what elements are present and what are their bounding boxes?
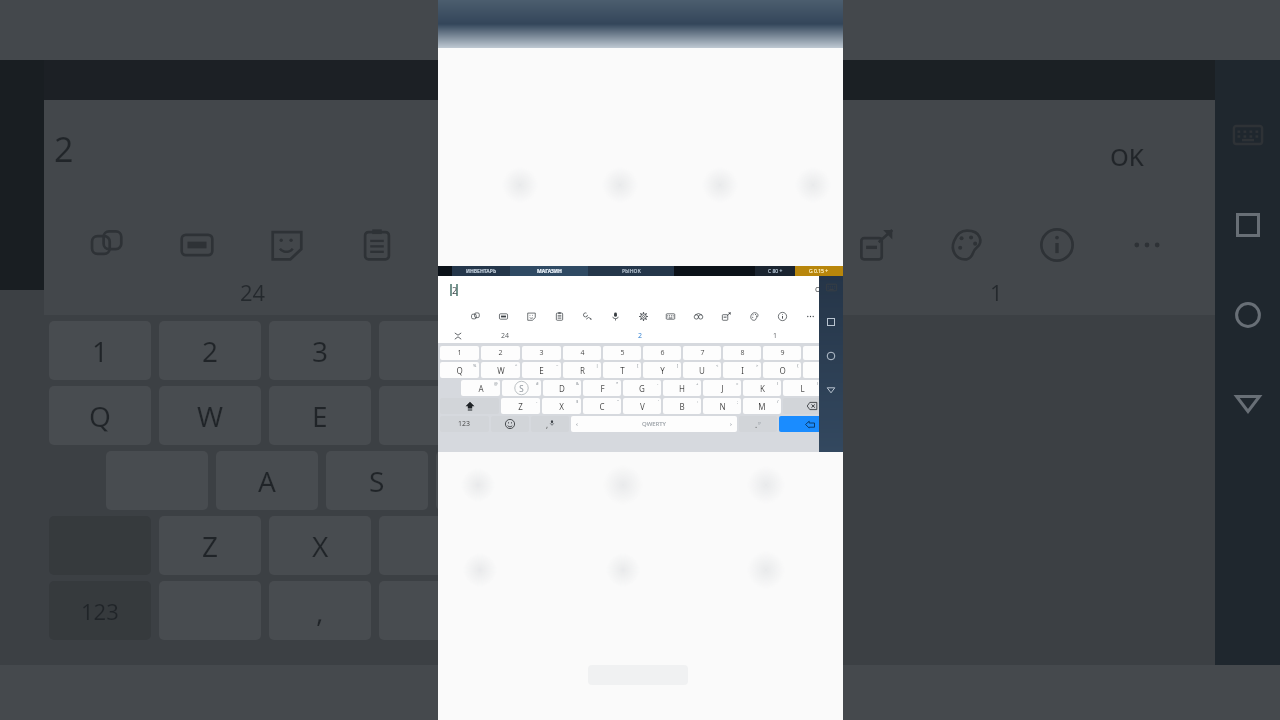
button[interactable]: W [481,362,520,378]
staticText: ; [737,399,739,404]
button[interactable]: Backspace [783,398,841,414]
staticText: { [797,363,799,368]
staticText: 24 [501,331,510,341]
staticText: * [616,381,619,386]
button[interactable]: U [683,362,721,378]
button[interactable]: Translate [468,309,482,323]
button[interactable]: 6 [643,346,681,360]
staticText: S [369,462,385,500]
button[interactable]: N [703,398,741,414]
button[interactable]: Shift [440,398,499,414]
button[interactable]: 8 [723,346,761,360]
button[interactable]: Resize [719,309,733,323]
button[interactable]: I [723,362,761,378]
button[interactable]: Emoji [491,416,529,432]
button[interactable]: Enter [779,416,841,432]
button[interactable]: ‹ [571,416,737,432]
button[interactable]: Home [826,351,836,361]
staticText: M [758,401,766,412]
button[interactable]: Info [775,309,789,323]
button[interactable]: Clipboard [552,309,566,323]
staticText: Z [202,527,219,565]
button[interactable]: OK [809,282,831,298]
button[interactable]: B [663,398,701,414]
button[interactable]: 1 [708,328,843,343]
button[interactable]: J [703,380,741,396]
button[interactable]: Q [440,362,479,378]
button[interactable]: A [461,380,500,396]
staticText: R [580,365,585,376]
button[interactable]: More [803,309,817,323]
staticText: V [640,401,645,412]
button[interactable]: X [542,398,581,414]
button[interactable]: Expand [454,332,462,340]
button[interactable]: T [603,362,641,378]
button[interactable]: S [502,380,541,396]
button[interactable]: O [763,362,801,378]
button[interactable]: Voice input [608,309,622,323]
staticText: B [679,401,685,412]
button[interactable]: Z [501,398,540,414]
button[interactable]: Theme [747,309,761,323]
button[interactable]: 3 [522,346,561,360]
staticText: X [312,527,329,565]
button[interactable]: 2 [481,346,520,360]
button[interactable]: H [663,380,701,396]
staticText: & [576,381,579,386]
button[interactable]: Back [826,385,836,395]
button[interactable]: Handwriting [580,309,594,323]
button[interactable]: L [783,380,821,396]
button[interactable]: Recents [826,317,836,327]
button[interactable]: 0 [803,346,841,360]
button[interactable]: V [623,398,661,414]
staticText: C [599,401,605,412]
staticText: › [730,420,732,428]
staticText: D [477,462,498,500]
button[interactable]: C [583,398,621,414]
button[interactable]: GIF [496,309,510,323]
button[interactable]: Y [643,362,681,378]
button[interactable]: 2 [573,328,708,343]
button[interactable]: 123 [440,416,489,432]
staticText: ~ [556,363,559,368]
staticText: !? [758,421,761,426]
staticText: 2 [638,331,643,341]
staticText: 1 [92,332,109,370]
button[interactable]: . [739,416,777,432]
staticText: OK [1110,140,1144,173]
staticText: U [699,365,705,376]
staticText: [ [637,363,639,368]
button[interactable]: K [743,380,781,396]
staticText: J [721,383,724,394]
button[interactable]: Stickers [524,309,538,323]
button[interactable]: G [623,380,661,396]
button[interactable]: 1 [440,346,479,360]
staticText: 3 [312,332,329,370]
button[interactable]: 9 [763,346,801,360]
button[interactable]: P [803,362,841,378]
button[interactable]: Keyboard [826,282,837,293]
button[interactable]: R [563,362,601,378]
button[interactable]: Incognito [691,309,705,323]
staticText: QWERTY [642,420,667,428]
button[interactable]: 24 [438,328,573,343]
staticText: . [755,419,758,430]
button[interactable]: 7 [683,346,721,360]
staticText: % [473,363,477,368]
staticText: A [478,383,484,394]
button[interactable]: 4 [563,346,601,360]
button[interactable]: F [583,380,621,396]
staticText: " [617,399,619,404]
button[interactable]: Keyboard mode [663,309,677,323]
staticText: H [679,383,685,394]
staticText: 24 [240,277,266,307]
staticText: РЫНОК [622,268,641,275]
button[interactable]: D [543,380,581,396]
button[interactable]: 5 [603,346,641,360]
button[interactable]: M [743,398,781,414]
staticText: # [536,381,539,386]
button[interactable]: E [522,362,561,378]
button[interactable]: , [531,416,569,432]
button[interactable]: Settings [636,309,650,323]
